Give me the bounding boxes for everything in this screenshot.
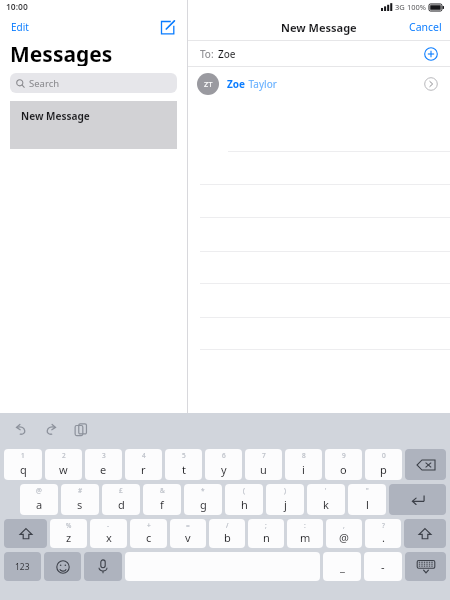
staticText: p: [380, 462, 387, 477]
button[interactable]: ": [348, 484, 386, 515]
staticText: _: [340, 559, 345, 574]
button[interactable]: Backspace: [405, 449, 446, 480]
button[interactable]: Search: [10, 73, 177, 93]
staticText: :: [304, 521, 306, 530]
button[interactable]: ZT: [188, 67, 450, 100]
staticText: a: [36, 497, 43, 512]
button[interactable]: 0: [365, 449, 402, 480]
button[interactable]: 6: [205, 449, 242, 480]
staticText: e: [100, 462, 107, 477]
button[interactable]: 3: [85, 449, 122, 480]
button[interactable]: #: [61, 484, 99, 515]
staticText: Messages: [10, 40, 113, 66]
button[interactable]: &: [143, 484, 181, 515]
button[interactable]: _: [323, 552, 361, 581]
staticText: 4: [142, 451, 146, 460]
staticText: ): [284, 486, 286, 495]
staticText: =: [186, 521, 190, 530]
button[interactable]: *: [184, 484, 222, 515]
staticText: ?: [382, 521, 385, 530]
button[interactable]: /: [209, 519, 245, 548]
staticText: £: [119, 486, 123, 495]
staticText: .: [382, 530, 385, 545]
staticText: n: [263, 530, 270, 545]
staticText: ZT: [204, 79, 213, 89]
staticText: Cancel: [409, 20, 442, 34]
button[interactable]: 8: [285, 449, 322, 480]
button[interactable]: ': [307, 484, 345, 515]
staticText: -: [381, 559, 385, 574]
button[interactable]: 9: [325, 449, 362, 480]
staticText: New Message: [21, 109, 90, 123]
button[interactable]: 123: [4, 552, 41, 581]
staticText: b: [224, 530, 231, 545]
button[interactable]: Redo: [42, 421, 60, 439]
button[interactable]: :: [287, 519, 323, 548]
button[interactable]: New Message: [10, 101, 177, 149]
button[interactable]: (: [225, 484, 263, 515]
staticText: +: [147, 521, 151, 530]
staticText: ": [366, 486, 369, 495]
staticText: %: [66, 521, 72, 530]
button[interactable]: ): [266, 484, 304, 515]
staticText: *: [201, 486, 205, 495]
staticText: #: [78, 486, 83, 495]
button[interactable]: Hide keyboard: [405, 552, 446, 581]
button[interactable]: Contact details: [423, 76, 439, 92]
staticText: 10:00: [6, 1, 28, 13]
staticText: q: [20, 462, 27, 477]
button[interactable]: £: [102, 484, 140, 515]
button[interactable]: Edit: [9, 18, 31, 36]
button[interactable]: Undo: [12, 421, 30, 439]
staticText: 8: [302, 451, 306, 460]
button[interactable]: Emoji: [44, 552, 81, 581]
button[interactable]: Return: [389, 484, 446, 515]
staticText: c: [146, 530, 152, 545]
staticText: @: [36, 486, 42, 495]
button[interactable]: 4: [125, 449, 162, 480]
staticText: h: [241, 497, 248, 512]
staticText: f: [160, 497, 164, 512]
staticText: v: [185, 530, 191, 545]
staticText: /: [226, 521, 229, 530]
button[interactable]: 1: [4, 449, 42, 480]
button[interactable]: =: [170, 519, 206, 548]
button[interactable]: 7: [245, 449, 282, 480]
staticText: 7: [262, 451, 266, 460]
button[interactable]: Shift: [4, 519, 47, 548]
staticText: To:: [200, 47, 214, 61]
staticText: Taylor: [246, 77, 277, 91]
staticText: Edit: [11, 20, 29, 34]
button[interactable]: New message: [156, 16, 178, 38]
button[interactable]: Add contact: [423, 46, 439, 62]
staticText: w: [59, 462, 68, 477]
button[interactable]: To:: [188, 41, 450, 66]
staticText: y: [221, 462, 227, 477]
staticText: 123: [15, 561, 30, 573]
staticText: 3G: [395, 2, 405, 12]
staticText: u: [260, 462, 267, 477]
button[interactable]: ;: [248, 519, 284, 548]
staticText: 3: [102, 451, 106, 460]
button[interactable]: Shift: [404, 519, 446, 548]
button[interactable]: Paste: [72, 421, 90, 439]
button[interactable]: -: [90, 519, 127, 548]
button[interactable]: -: [364, 552, 402, 581]
staticText: l: [366, 497, 369, 512]
button[interactable]: Cancel: [407, 18, 444, 36]
staticText: 2: [62, 451, 66, 460]
button[interactable]: @: [20, 484, 58, 515]
button[interactable]: 5: [165, 449, 202, 480]
staticText: o: [340, 462, 347, 477]
button[interactable]: 2: [45, 449, 82, 480]
staticText: s: [77, 497, 83, 512]
button[interactable]: Dictate: [84, 552, 122, 581]
button[interactable]: ?: [365, 519, 401, 548]
button[interactable]: +: [130, 519, 167, 548]
staticText: 0: [382, 451, 386, 460]
button[interactable]: ,: [326, 519, 362, 548]
button[interactable]: %: [50, 519, 87, 548]
staticText: New Message: [281, 20, 357, 35]
staticText: ': [325, 486, 327, 495]
